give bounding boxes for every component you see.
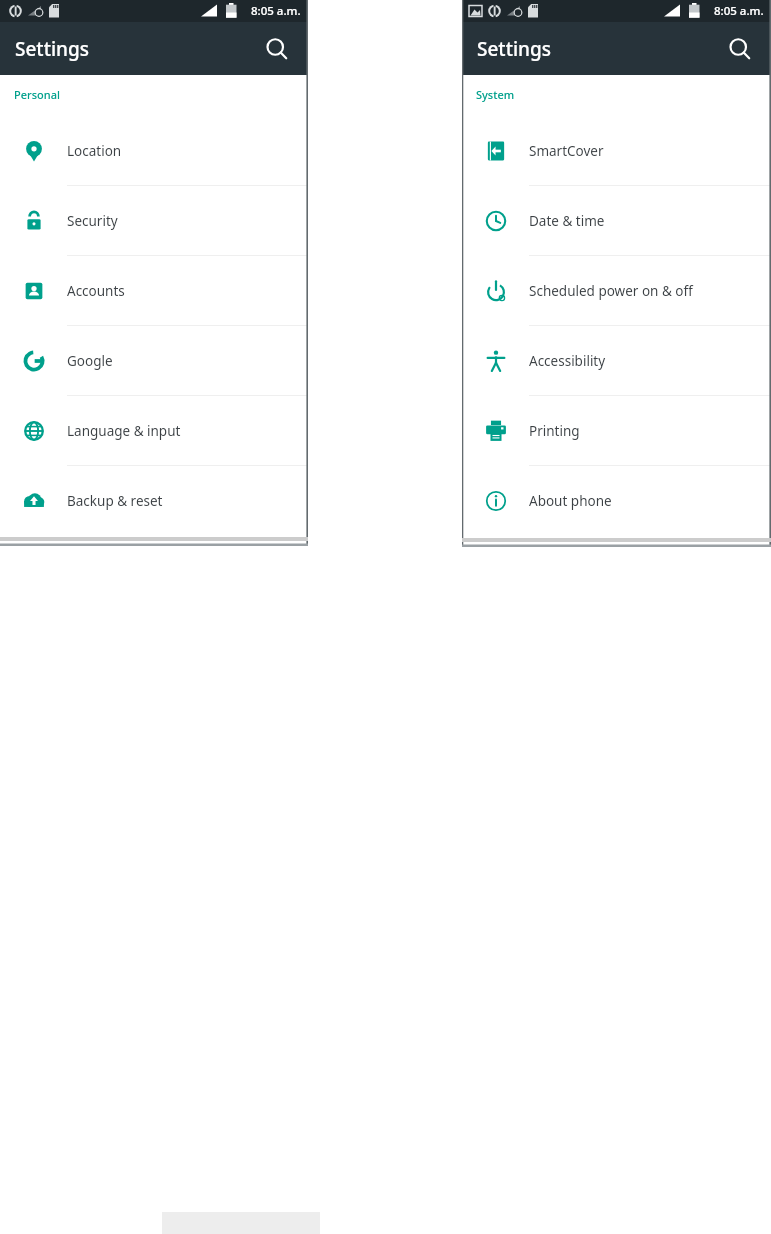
staticText: Personal	[14, 87, 60, 102]
staticText: Printing	[529, 422, 580, 440]
staticText: Google	[67, 352, 113, 370]
button[interactable]: Backup & reset	[0, 466, 308, 535]
staticText: Date & time	[529, 212, 605, 230]
button[interactable]: Location	[0, 116, 308, 185]
staticText: System	[476, 87, 515, 102]
button[interactable]: Printing	[462, 396, 771, 465]
staticText: Location	[67, 142, 122, 160]
button[interactable]: Search	[255, 27, 299, 71]
staticText: SmartCover	[529, 142, 604, 160]
button[interactable]: About phone	[462, 466, 771, 535]
staticText: 8:05 a.m.	[714, 3, 764, 19]
button[interactable]: Scheduled power on & off	[462, 256, 771, 325]
staticText: Settings	[477, 36, 551, 62]
staticText: Settings	[15, 36, 89, 62]
button[interactable]: Date & time	[462, 186, 771, 255]
staticText: About phone	[529, 492, 612, 510]
staticText: 8:05 a.m.	[251, 3, 301, 19]
button[interactable]: Google	[0, 326, 308, 395]
staticText: Accounts	[67, 282, 125, 300]
staticText: Backup & reset	[67, 492, 163, 510]
staticText: Security	[67, 212, 118, 230]
button[interactable]: Security	[0, 186, 308, 255]
button[interactable]: Language & input	[0, 396, 308, 465]
button[interactable]: SmartCover	[462, 116, 771, 185]
staticText: Scheduled power on & off	[529, 282, 693, 300]
staticText: Language & input	[67, 422, 181, 440]
button[interactable]: Search	[718, 27, 762, 71]
button[interactable]: Accounts	[0, 256, 308, 325]
button[interactable]: Accessibility	[462, 326, 771, 395]
staticText: Accessibility	[529, 352, 606, 370]
